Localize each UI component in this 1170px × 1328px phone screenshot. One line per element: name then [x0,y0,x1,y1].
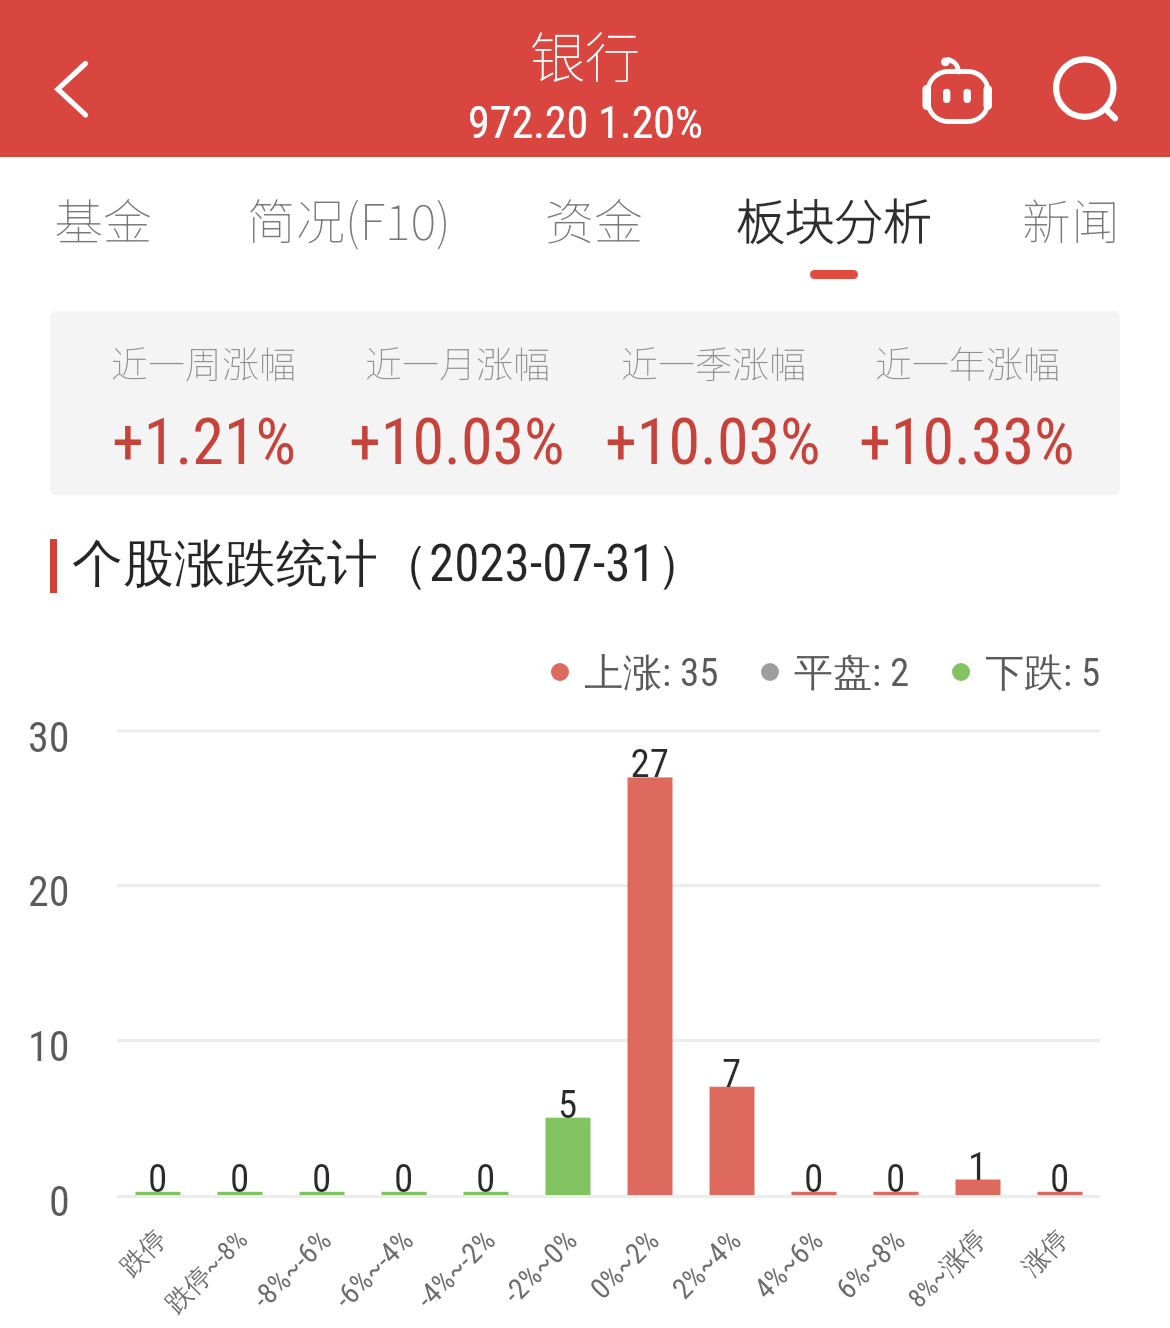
button[interactable]: 板块分析 [714,157,954,302]
staticText: +1.21% [112,405,296,480]
staticText: +10.33% [859,405,1075,480]
button[interactable]: AI assistant [902,24,1012,134]
button[interactable]: 资金 [474,157,714,302]
staticText: 资金 [545,183,644,254]
staticText: 972.20 1.20% [468,97,703,149]
button[interactable]: 新闻 [951,157,1170,302]
staticText: 基金 [54,183,153,254]
button[interactable]: Back [0,0,150,157]
staticText: +10.03% [605,405,821,480]
staticText: 近一月涨幅 [365,335,550,389]
staticText: 银行 [530,14,641,94]
staticText: 新闻 [1022,183,1121,254]
staticText: 近一季涨幅 [621,335,806,389]
staticText: 近一周涨幅 [111,335,296,389]
staticText: +10.03% [349,405,565,480]
button[interactable]: 基金 [0,157,223,302]
staticText: 个股涨跌统计（2023-07-31） [72,532,707,596]
button[interactable]: Search [1031,34,1121,124]
staticText: 板块分析 [736,183,933,254]
button[interactable]: 简况(F10) [229,157,469,302]
staticText: 近一年涨幅 [875,335,1060,389]
staticText: 简况(F10) [247,183,451,254]
